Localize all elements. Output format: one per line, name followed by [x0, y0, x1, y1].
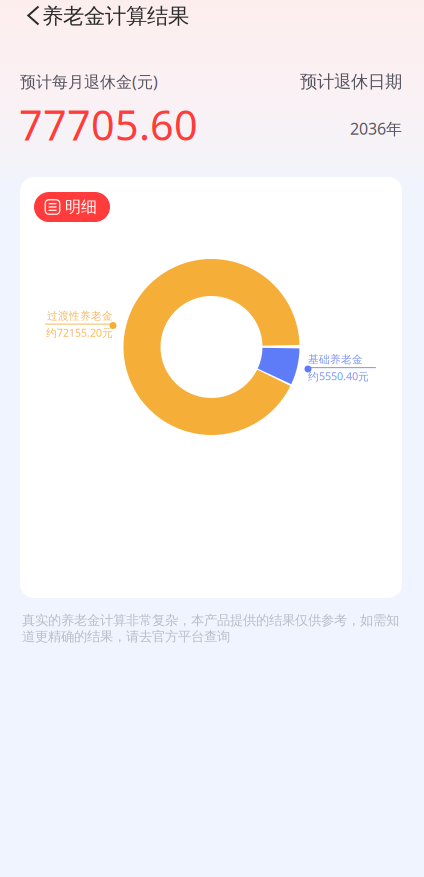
staticText: 基础养老金 — [308, 353, 363, 366]
button[interactable]: 明细 — [34, 192, 110, 222]
staticText: 真实的养老金计算非常复杂，本产品提供的结果仅供参考，如需知道更精确的结果，请去官… — [22, 612, 399, 645]
staticText: 明细 — [65, 197, 97, 217]
staticText: 预计每月退休金(元) — [20, 71, 158, 92]
button[interactable]: Back — [20, 0, 48, 32]
staticText: 约5550.40元 — [308, 369, 369, 383]
staticText: 养老金计算结果 — [42, 3, 189, 29]
staticText: 77705.60 — [19, 97, 198, 152]
staticText: 过渡性养老金 — [47, 309, 113, 323]
staticText: 预计退休日期 — [300, 71, 402, 92]
staticText: 2036年 — [350, 118, 402, 139]
staticText: 约72155.20元 — [46, 326, 113, 340]
